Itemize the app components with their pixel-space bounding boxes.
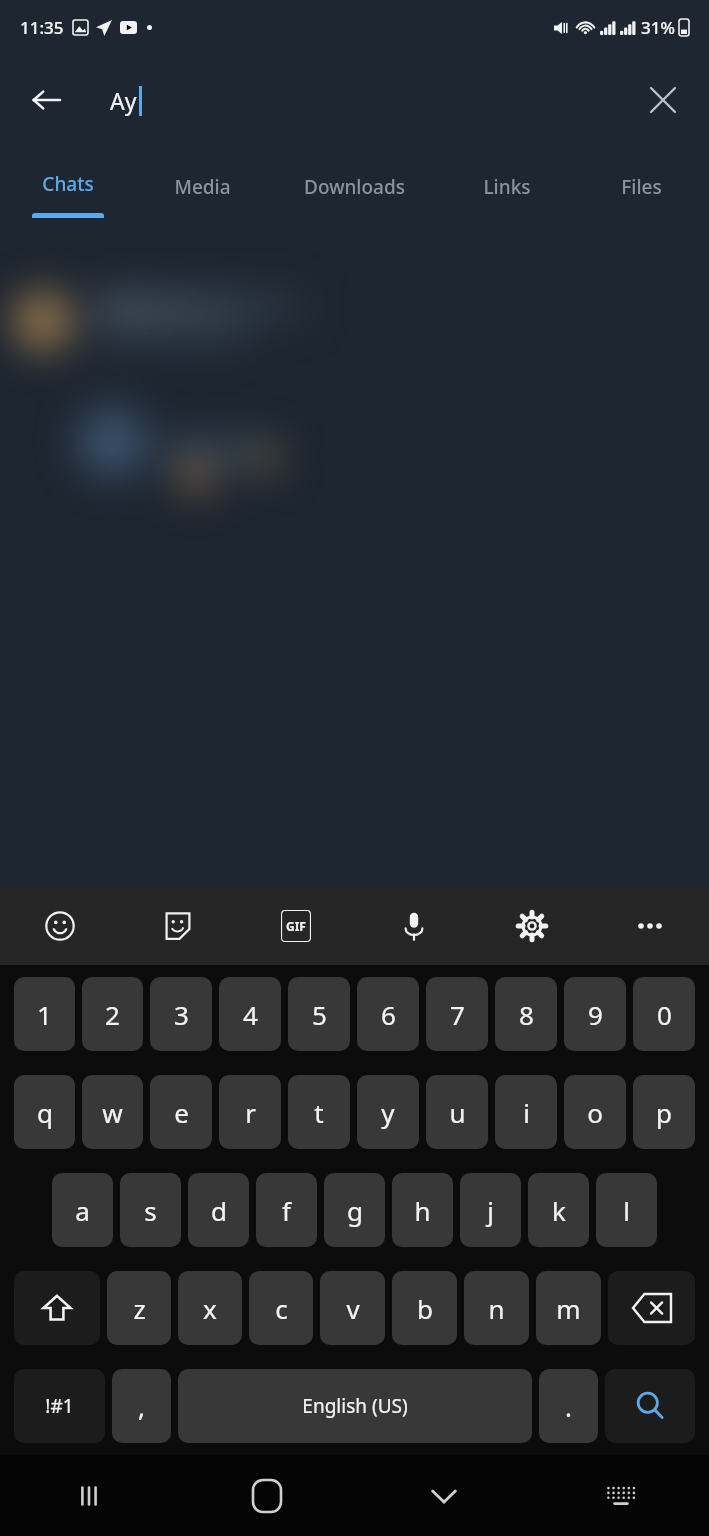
button[interactable]: GIF [237,887,355,965]
staticText: o [587,1095,603,1130]
button[interactable]: Back [18,72,74,128]
button[interactable]: y [357,1075,419,1149]
staticText: . [565,1389,572,1424]
button[interactable]: 0 [633,977,695,1051]
staticText: Ay [110,85,137,116]
button[interactable]: h [392,1173,453,1247]
staticText: x [203,1291,217,1326]
staticText: a [75,1193,90,1228]
button[interactable]: i [495,1075,557,1149]
button[interactable]: Backspace [608,1271,695,1345]
button[interactable]: 9 [564,977,626,1051]
staticText: 7 [450,997,465,1032]
staticText: k [552,1193,566,1228]
staticText: f [282,1193,291,1228]
button[interactable]: f [256,1173,317,1247]
staticText: i [523,1095,530,1130]
staticText: Downloads [304,174,405,200]
button[interactable]: n [464,1271,529,1345]
staticText: n [488,1291,505,1326]
button[interactable]: Links [439,145,574,230]
button[interactable]: r [219,1075,281,1149]
staticText: 0 [657,997,672,1032]
button[interactable]: Hide keyboard [355,1455,532,1536]
button[interactable]: l [596,1173,657,1247]
button[interactable]: 4 [219,977,281,1051]
button[interactable]: j [460,1173,521,1247]
staticText: 4 [243,997,258,1032]
button[interactable]: u [426,1075,488,1149]
staticText: 9 [588,997,603,1032]
staticText: v [346,1291,360,1326]
staticText: t [314,1095,324,1130]
button[interactable]: Search [605,1369,695,1443]
button[interactable]: k [528,1173,589,1247]
button[interactable]: t [288,1075,350,1149]
staticText: h [414,1193,431,1228]
staticText: p [656,1095,672,1130]
staticText: 11:35 [20,16,64,39]
button[interactable]: Chats [0,145,135,230]
button[interactable]: 5 [288,977,350,1051]
button[interactable]: Recent apps [0,1455,178,1536]
staticText: q [37,1095,53,1130]
button[interactable]: c [249,1271,313,1345]
button[interactable]: z [107,1271,171,1345]
button[interactable]: Clear search [635,72,691,128]
staticText: Files [621,174,662,200]
staticText: u [449,1095,466,1130]
staticText: 31% [641,16,675,39]
button[interactable]: g [324,1173,385,1247]
button[interactable]: x [178,1271,242,1345]
button[interactable]: 6 [357,977,419,1051]
button[interactable]: Emoji [0,887,119,965]
staticText: !#1 [45,1393,74,1419]
staticText: w [102,1095,123,1130]
button[interactable]: Media [135,145,270,230]
staticText: , [138,1389,145,1424]
button[interactable]: Stickers [119,887,237,965]
staticText: GIF [286,918,306,934]
button[interactable]: a [52,1173,113,1247]
staticText: m [556,1291,581,1326]
button[interactable]: English (US) [178,1369,532,1443]
button[interactable]: Files [574,145,709,230]
button[interactable]: Keyboard settings [473,887,591,965]
staticText: c [275,1291,288,1326]
staticText: 5 [312,997,327,1032]
staticText: e [174,1095,189,1130]
button[interactable]: v [320,1271,385,1345]
staticText: z [133,1291,146,1326]
button[interactable]: 1 [14,977,75,1051]
button[interactable]: !#1 [14,1369,105,1443]
button[interactable]: More options [591,887,709,965]
staticText: 8 [519,997,534,1032]
staticText: j [487,1193,494,1228]
button[interactable]: 7 [426,977,488,1051]
button[interactable]: p [633,1075,695,1149]
button[interactable]: e [150,1075,212,1149]
button[interactable]: 2 [82,977,143,1051]
staticText: 2 [105,997,120,1032]
button[interactable]: w [82,1075,143,1149]
button[interactable]: . [539,1369,598,1443]
button[interactable]: b [392,1271,457,1345]
button[interactable]: Voice input [355,887,473,965]
button[interactable]: q [14,1075,75,1149]
button[interactable]: 3 [150,977,212,1051]
staticText: r [245,1095,256,1130]
button[interactable]: Downloads [270,145,439,230]
staticText: English (US) [302,1393,408,1419]
staticText: Links [483,174,531,200]
button[interactable]: , [112,1369,171,1443]
staticText: 3 [174,997,189,1032]
button[interactable]: Change keyboard [532,1455,709,1536]
button[interactable]: o [564,1075,626,1149]
button[interactable]: d [188,1173,249,1247]
button[interactable]: Home [178,1455,355,1536]
button[interactable]: Shift [14,1271,100,1345]
button[interactable]: m [536,1271,601,1345]
button[interactable]: 8 [495,977,557,1051]
staticText: 6 [381,997,396,1032]
button[interactable]: s [120,1173,181,1247]
